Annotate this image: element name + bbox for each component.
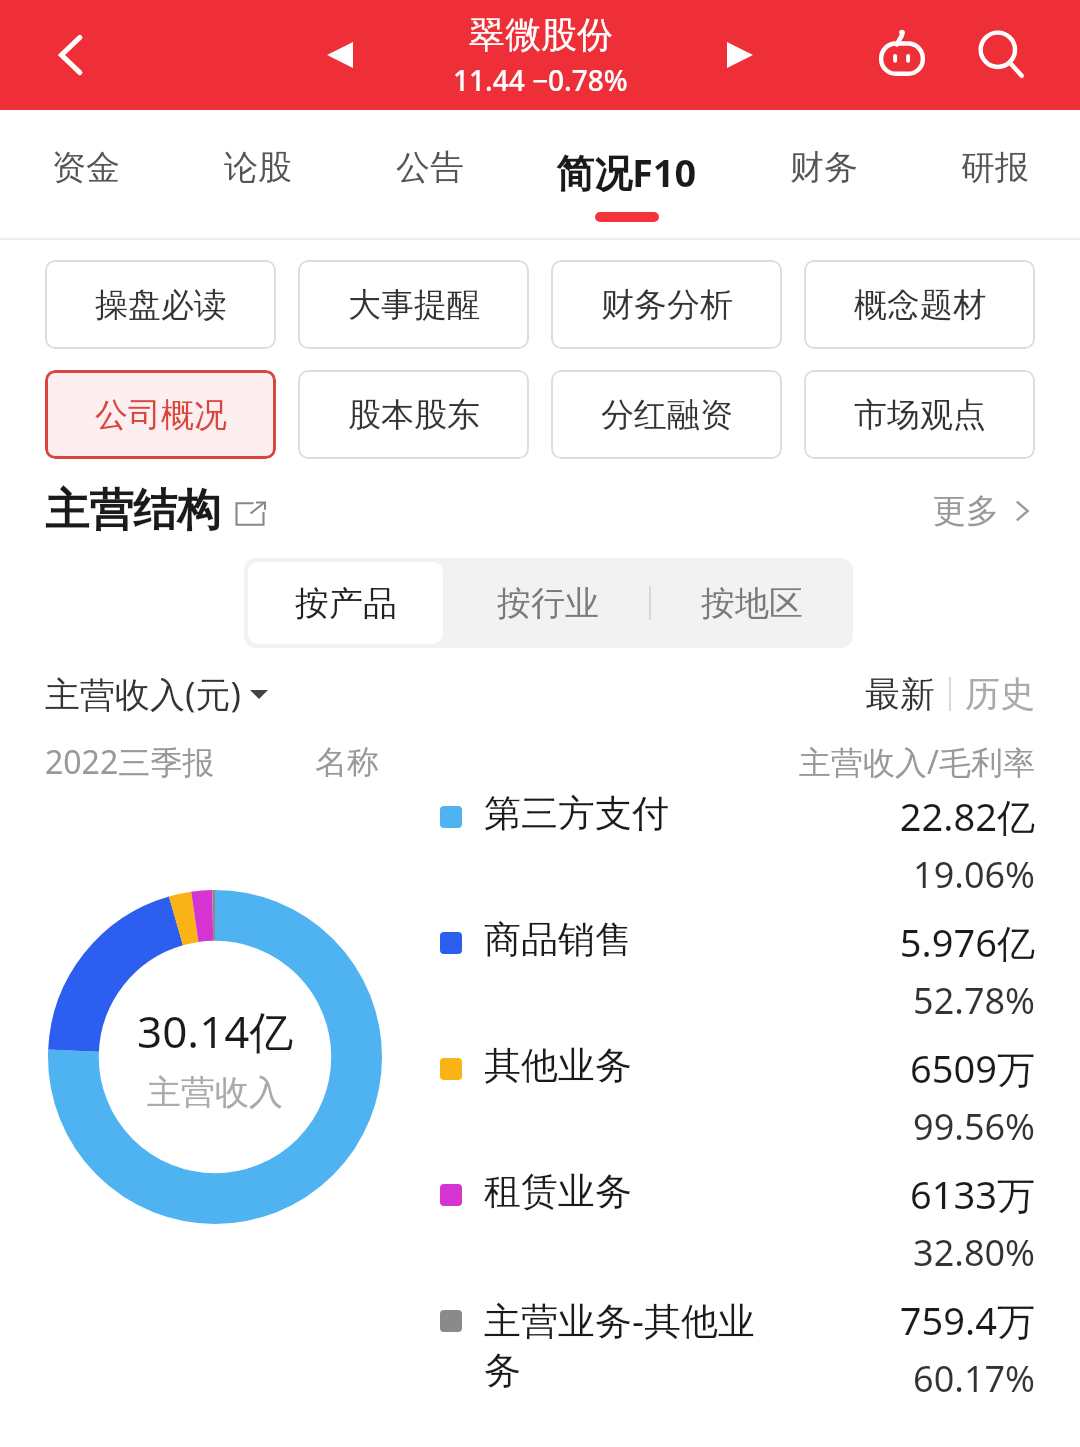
button[interactable]: 论股 (172, 110, 344, 240)
staticText: 按产品 (295, 582, 397, 625)
button[interactable]: 主营收入(元) (45, 670, 268, 718)
button[interactable]: 财务 (738, 110, 909, 240)
staticText: 32.80% (913, 1228, 1035, 1277)
staticText: 22.82亿 (899, 790, 1035, 842)
button[interactable]: 操盘必读 (45, 260, 276, 349)
button[interactable]: 更多 (933, 490, 1035, 532)
staticText: 公司概况 (95, 394, 227, 436)
staticText: 主营收入(元) (45, 670, 242, 718)
button[interactable]: 资金 (0, 110, 172, 240)
staticText: 第三方支付 (484, 790, 899, 837)
button[interactable]: 租赁业务 (440, 1168, 1035, 1294)
button[interactable]: 最新 (865, 672, 935, 716)
staticText: 其他业务 (484, 1042, 910, 1089)
staticText: 19.06% (913, 850, 1035, 899)
staticText: 759.4万 (899, 1294, 1035, 1346)
button[interactable]: 商品销售 (440, 916, 1035, 1042)
button[interactable]: 公告 (344, 110, 515, 240)
staticText: 按行业 (497, 582, 599, 625)
button[interactable]: 其他业务 (440, 1042, 1035, 1168)
button[interactable]: 财务分析 (551, 260, 782, 349)
staticText: 资金 (52, 146, 120, 189)
staticText: 更多 (933, 490, 999, 532)
button[interactable]: 主营结构 (45, 483, 265, 538)
button[interactable]: 历史 (965, 672, 1035, 716)
button[interactable]: Next stock (700, 15, 780, 95)
staticText: 操盘必读 (95, 284, 227, 326)
staticText: 99.56% (913, 1102, 1035, 1151)
button[interactable]: 简况F10 (515, 110, 738, 240)
staticText: 分红融资 (601, 394, 733, 436)
button[interactable]: 市场观点 (804, 370, 1035, 459)
staticText: 股本股东 (348, 394, 480, 436)
staticText: 主营收入/毛利率 (799, 740, 1035, 784)
button[interactable]: 按产品 (248, 562, 443, 644)
staticText: 翠微股份 (469, 12, 613, 57)
staticText: 5.976亿 (899, 916, 1035, 968)
staticText: 6133万 (910, 1168, 1035, 1220)
button[interactable]: 第三方支付 (440, 790, 1035, 916)
button[interactable]: 分红融资 (551, 370, 782, 459)
button[interactable]: 按行业 (447, 558, 649, 648)
staticText: 52.78% (913, 976, 1035, 1025)
staticText: 市场观点 (854, 394, 986, 436)
button[interactable]: Search (962, 15, 1042, 95)
staticText: 论股 (224, 146, 292, 189)
button[interactable]: Previous stock (300, 15, 380, 95)
staticText: 财务分析 (601, 284, 733, 326)
button[interactable]: Back (36, 19, 108, 91)
staticText: 2022三季报 (45, 740, 215, 784)
button[interactable]: Assistant (862, 15, 942, 95)
staticText: 按地区 (701, 582, 803, 625)
button[interactable]: 研报 (909, 110, 1080, 240)
button[interactable]: 按地区 (651, 558, 853, 648)
button[interactable]: 主营业务-其他业 务 (440, 1294, 1035, 1420)
staticText: 名称 (315, 742, 379, 782)
button[interactable]: 公司概况 (45, 370, 276, 459)
staticText: 主营收入 (147, 1071, 283, 1114)
staticText: 60.17% (913, 1354, 1035, 1403)
button[interactable]: 股本股东 (298, 370, 529, 459)
staticText: 租赁业务 (484, 1168, 910, 1215)
staticText: 6509万 (910, 1042, 1035, 1094)
staticText: 11.44 −0.78% (453, 61, 628, 99)
staticText: 商品销售 (484, 916, 899, 963)
staticText: 公告 (396, 146, 464, 189)
staticText: 大事提醒 (348, 284, 480, 326)
button[interactable]: 大事提醒 (298, 260, 529, 349)
staticText: 30.14亿 (137, 1001, 294, 1061)
staticText: 主营业务-其他业 务 (484, 1294, 899, 1394)
staticText: 财务 (790, 146, 858, 189)
staticText: 简况F10 (556, 146, 697, 198)
staticText: 概念题材 (854, 284, 986, 326)
staticText: 主营结构 (45, 483, 221, 538)
staticText: 研报 (961, 146, 1029, 189)
button[interactable]: 概念题材 (804, 260, 1035, 349)
